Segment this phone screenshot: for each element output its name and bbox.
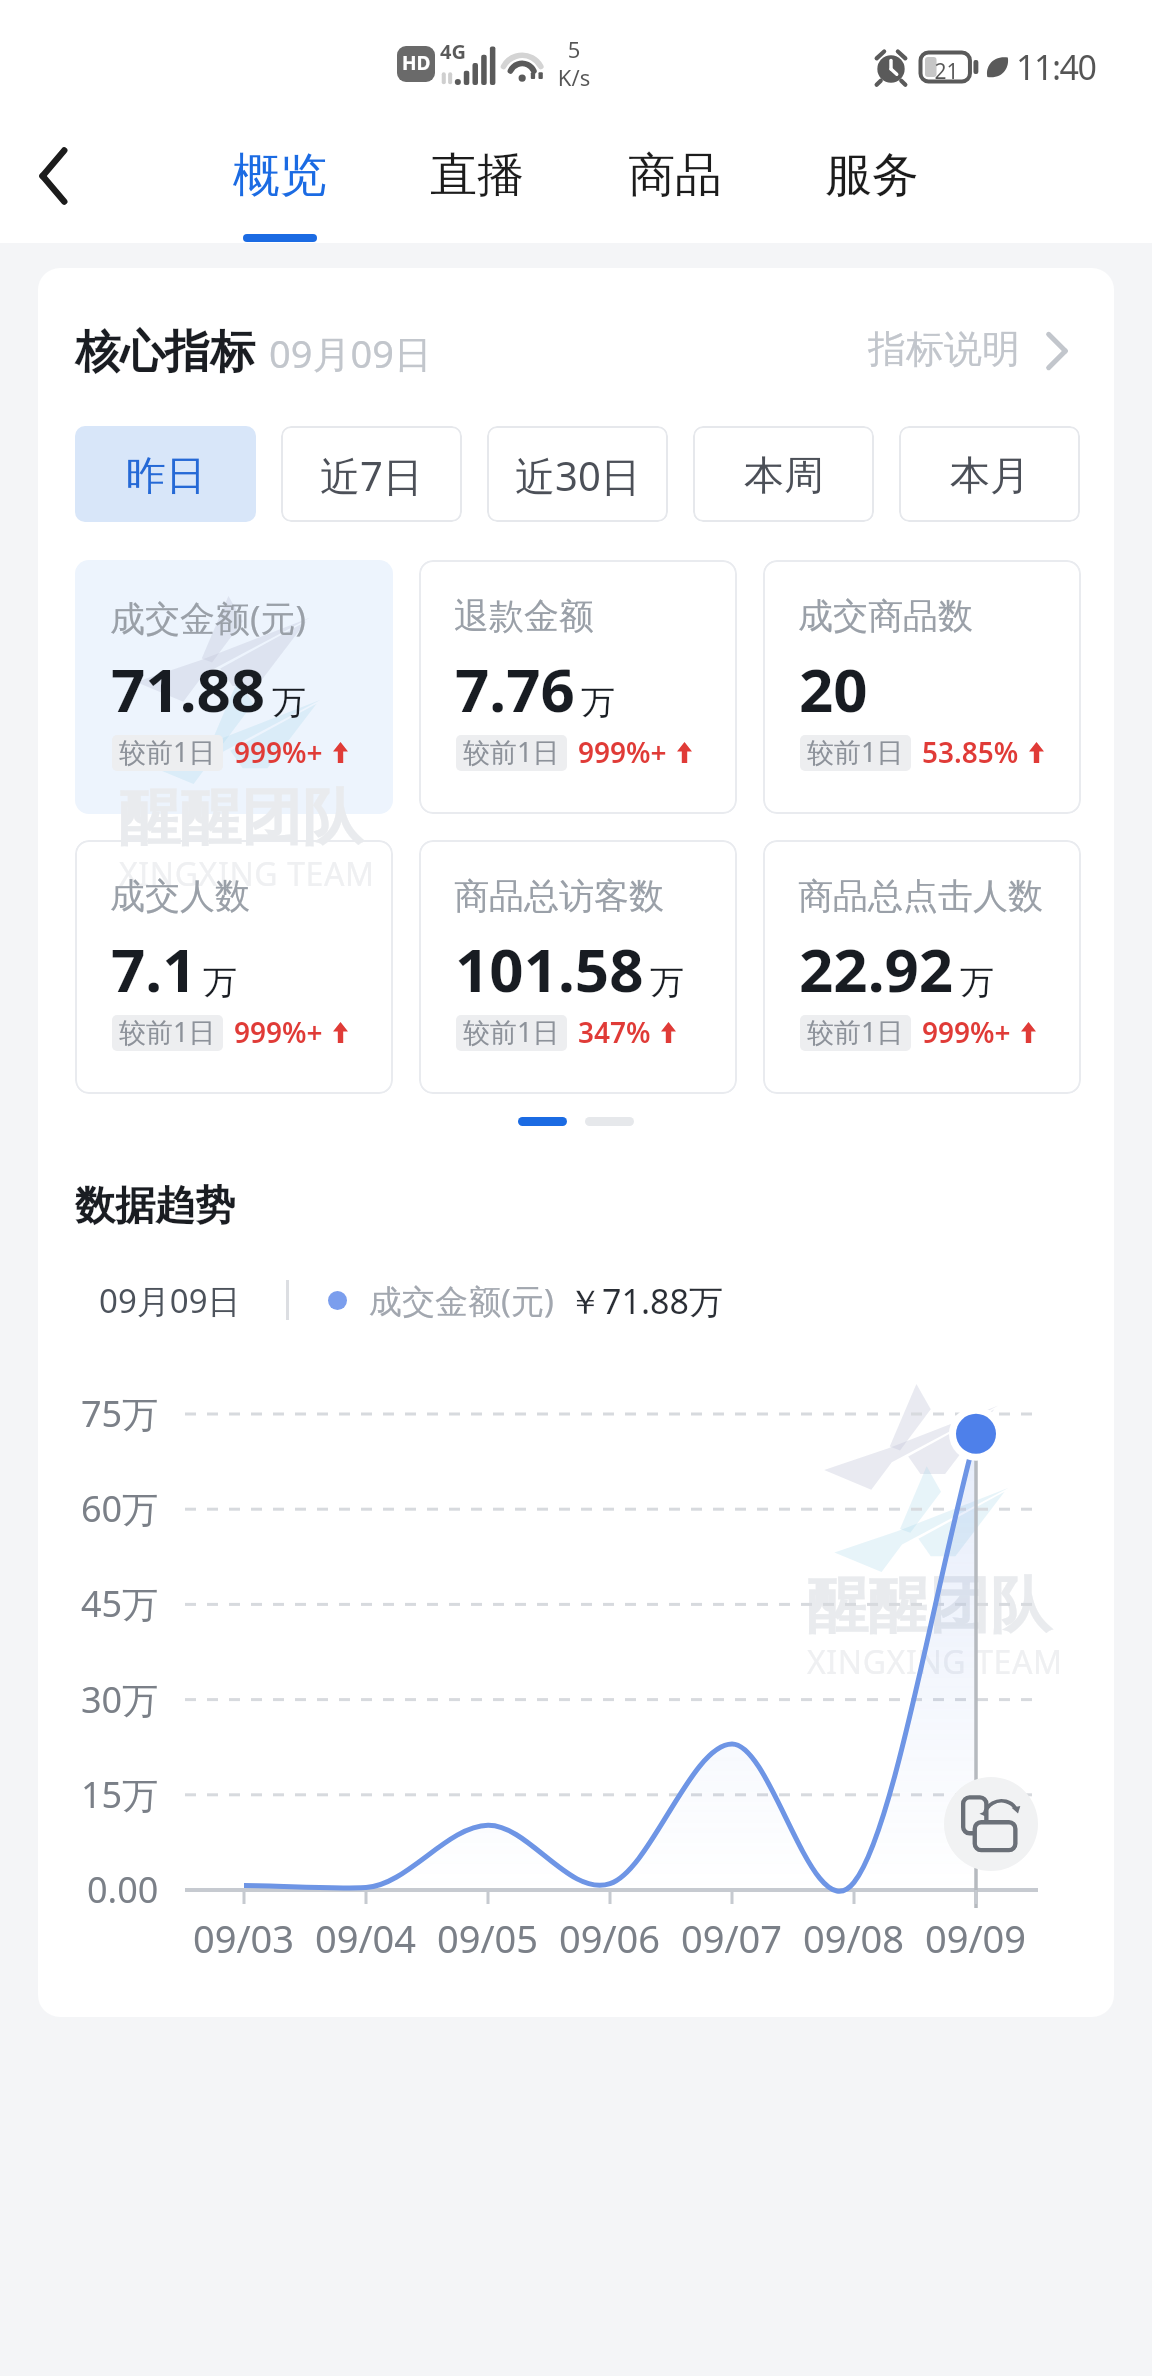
staticText: 数据趋势 <box>75 1180 235 1230</box>
staticText: 近30日 <box>515 448 641 503</box>
staticText: 商品 <box>628 146 722 205</box>
staticText: 09/08 <box>803 1912 905 1964</box>
staticText: 15万 <box>81 1770 159 1819</box>
staticText: 本周 <box>744 450 824 500</box>
button[interactable]: 成交商品数 <box>763 560 1081 814</box>
staticText: 45万 <box>81 1579 159 1628</box>
staticText: 核心指标 <box>75 324 255 381</box>
staticText: 999%+ <box>578 733 667 769</box>
staticText: 09月09日 <box>269 327 432 379</box>
staticText: 近7日 <box>320 448 423 503</box>
button[interactable]: 商品总点击人数 <box>763 840 1081 1094</box>
staticText: 09/06 <box>559 1912 661 1964</box>
staticText: HD <box>402 50 431 76</box>
button[interactable]: 服务 <box>777 120 967 243</box>
staticText: 09/05 <box>437 1912 539 1964</box>
staticText: 30万 <box>81 1675 159 1724</box>
staticText: 服务 <box>825 146 919 205</box>
staticText: 11:40 <box>1016 44 1096 90</box>
staticText: 万 <box>650 961 684 1004</box>
staticText: 万 <box>960 961 994 1004</box>
staticText: XINGXING TEAM <box>119 852 375 896</box>
button[interactable]: 退款金额 <box>419 560 737 814</box>
button[interactable]: 商品总访客数 <box>419 840 737 1094</box>
staticText: 09/03 <box>193 1912 295 1964</box>
button[interactable]: 近30日 <box>487 426 668 522</box>
staticText: 万 <box>581 681 615 724</box>
staticText: 7.1 <box>111 928 197 1010</box>
staticText: 本月 <box>950 450 1030 500</box>
staticText: 退款金额 <box>454 594 594 638</box>
staticText: 60万 <box>81 1484 159 1533</box>
button[interactable]: 直播 <box>382 120 572 243</box>
staticText: 昨日 <box>126 450 206 500</box>
button[interactable]: Back <box>8 120 98 243</box>
staticText: 成交金额(元) <box>369 1278 554 1322</box>
staticText: K/s <box>550 62 598 92</box>
button[interactable]: 本周 <box>693 426 874 522</box>
staticText: 22.92 <box>799 928 954 1010</box>
staticText: 999%+ <box>234 1013 323 1049</box>
button[interactable]: 昨日 <box>75 426 256 522</box>
staticText: 较前1日 <box>463 735 560 769</box>
staticText: 53.85% <box>922 733 1019 769</box>
staticText: 商品总访客数 <box>454 874 664 918</box>
staticText: 20 <box>799 648 868 730</box>
staticText: 万 <box>203 961 237 1004</box>
button[interactable]: 成交人数 <box>75 840 393 1094</box>
staticText: 09/09 <box>925 1912 1027 1964</box>
staticText: 商品总点击人数 <box>798 874 1043 918</box>
staticText: 999%+ <box>234 733 323 769</box>
button[interactable]: 近7日 <box>281 426 462 522</box>
staticText: 醒醒团队 <box>807 1567 1051 1644</box>
staticText: 醒醒团队 <box>119 779 363 856</box>
button[interactable]: 商品 <box>580 120 770 243</box>
button[interactable]: 指标说明 <box>868 318 1068 384</box>
staticText: 成交人数 <box>110 874 250 918</box>
button[interactable]: Rotate screen <box>944 1777 1038 1871</box>
staticText: 5 <box>550 34 598 64</box>
staticText: 成交金额(元) <box>110 594 307 642</box>
staticText: 较前1日 <box>119 735 216 769</box>
staticText: 4G <box>440 38 466 65</box>
staticText: 21 <box>916 57 977 86</box>
staticText: 较前1日 <box>807 735 904 769</box>
staticText: 71.88 <box>111 648 266 730</box>
staticText: 万 <box>272 681 306 724</box>
button[interactable]: 成交金额(元) <box>75 560 393 814</box>
staticText: 347% <box>578 1013 651 1049</box>
staticText: 指标说明 <box>868 325 1020 373</box>
staticText: 09/07 <box>681 1912 783 1964</box>
staticText: 较前1日 <box>463 1015 560 1049</box>
staticText: 成交商品数 <box>798 594 973 638</box>
staticText: 7.76 <box>455 648 575 730</box>
staticText: 0.00 <box>87 1865 159 1914</box>
staticText: 101.58 <box>455 928 644 1010</box>
staticText: 直播 <box>430 146 524 205</box>
button[interactable]: 本月 <box>899 426 1080 522</box>
button[interactable]: 概览 <box>185 120 375 243</box>
staticText: 概览 <box>233 146 327 205</box>
staticText: 09月09日 <box>99 1278 241 1322</box>
staticText: 09/04 <box>315 1912 417 1964</box>
staticText: 较前1日 <box>807 1015 904 1049</box>
staticText: 999%+ <box>922 1013 1011 1049</box>
staticText: 75万 <box>81 1389 159 1438</box>
staticText: XINGXING TEAM <box>807 1640 1063 1684</box>
staticText: ￥71.88万 <box>568 1278 723 1322</box>
staticText: 较前1日 <box>119 1015 216 1049</box>
